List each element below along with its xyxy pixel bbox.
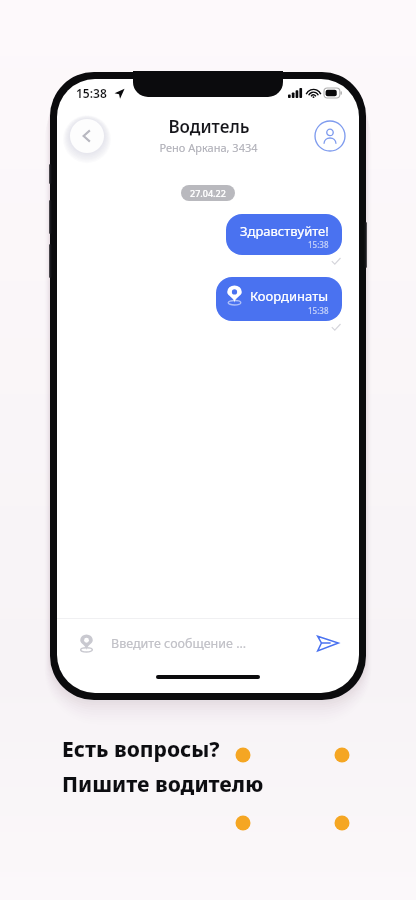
staticText: 27.04.22 (190, 187, 226, 199)
staticText: Рено Аркана, 3434 (159, 140, 258, 155)
button[interactable]: Введите сообщение ... (111, 635, 305, 652)
staticText: Координаты (250, 287, 329, 305)
button[interactable]: Attach location (73, 630, 99, 656)
button[interactable]: Send (313, 628, 343, 658)
staticText: 15:38 (308, 305, 329, 316)
staticText: Пишите водителю (62, 770, 264, 799)
staticText: 15:38 (308, 239, 329, 250)
staticText: 15:38 (76, 85, 107, 101)
staticText: Есть вопросы? (62, 735, 220, 764)
button[interactable]: Back (70, 119, 104, 153)
button[interactable]: Здравствуйте! (226, 214, 342, 255)
staticText: Здравствуйте! (240, 222, 329, 240)
button[interactable]: Координаты (216, 277, 342, 321)
staticText: Введите сообщение ... (111, 635, 247, 652)
staticText: Водитель (168, 115, 250, 138)
button[interactable]: Profile (314, 120, 346, 152)
